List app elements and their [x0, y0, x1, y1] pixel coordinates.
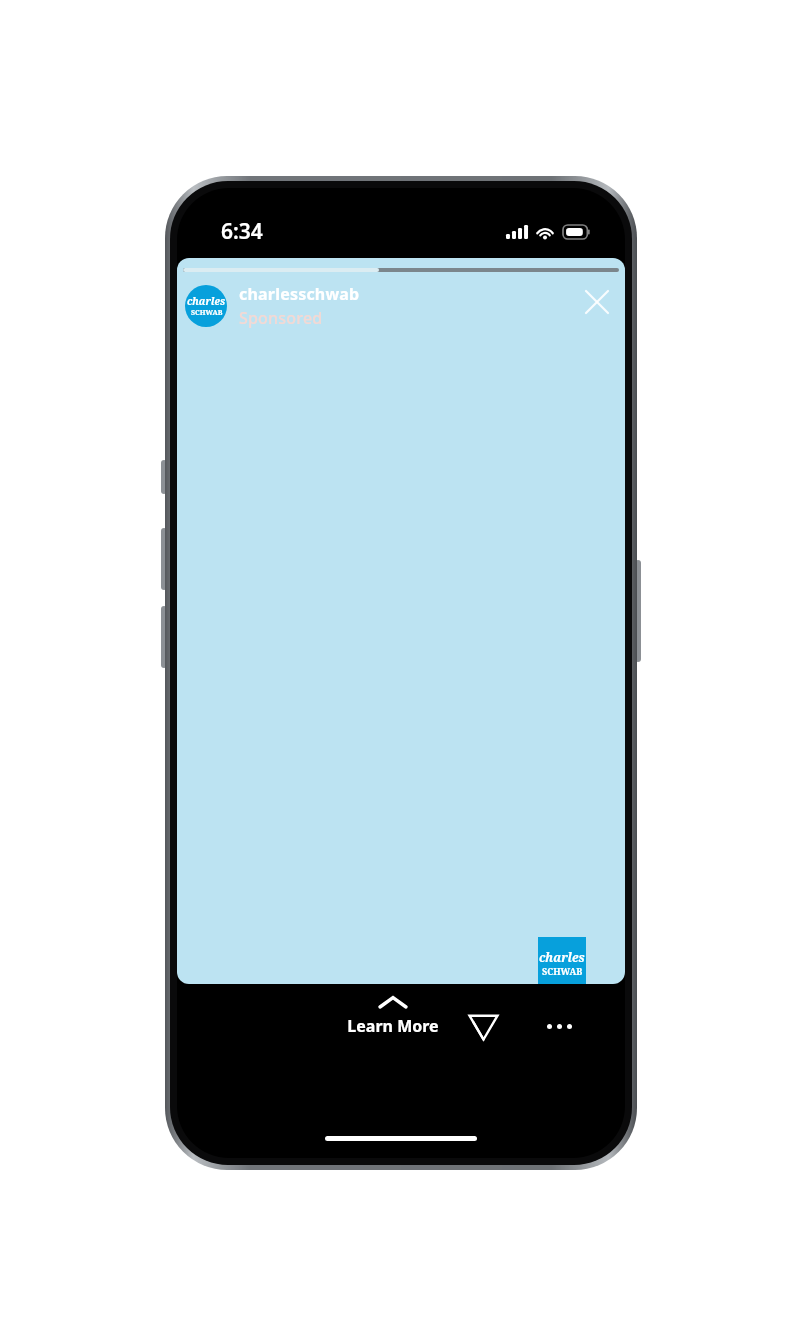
button[interactable]: charles	[185, 285, 227, 327]
staticText: charles	[539, 949, 585, 965]
button[interactable]: More options	[535, 1002, 583, 1050]
button[interactable]: Learn More	[329, 992, 457, 1041]
staticText: Learn More	[347, 1015, 439, 1037]
staticText: charlesschwab	[239, 283, 360, 305]
staticText: Sponsored	[239, 307, 323, 329]
staticText: 6:34	[221, 217, 263, 246]
staticText: SCHWAB	[191, 308, 223, 318]
button[interactable]: charlesschwab	[239, 283, 360, 329]
button[interactable]: Close	[575, 280, 619, 324]
staticText: SCHWAB	[542, 965, 583, 977]
button[interactable]: Send	[459, 1002, 507, 1050]
staticText: charles	[187, 294, 226, 308]
